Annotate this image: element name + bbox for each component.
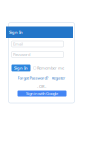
staticText: Register xyxy=(51,75,65,81)
button[interactable]: Register xyxy=(51,75,65,81)
staticText: Remember me xyxy=(37,65,63,71)
staticText: Sign in with Google xyxy=(26,91,58,96)
staticText: Password xyxy=(13,52,30,57)
button[interactable]: Forgot Password? xyxy=(17,75,48,81)
button[interactable]: Remember me xyxy=(33,65,63,71)
staticText: Forgot Password? xyxy=(17,75,48,81)
button[interactable]: Sign In xyxy=(11,64,30,71)
button[interactable]: Sign in with Google xyxy=(17,90,66,96)
staticText: Email xyxy=(13,41,23,47)
staticText: - OR - xyxy=(37,84,46,89)
button[interactable]: Sign In xyxy=(6,26,73,38)
staticText: Sign In xyxy=(9,30,23,35)
staticText: Sign In xyxy=(14,65,28,71)
